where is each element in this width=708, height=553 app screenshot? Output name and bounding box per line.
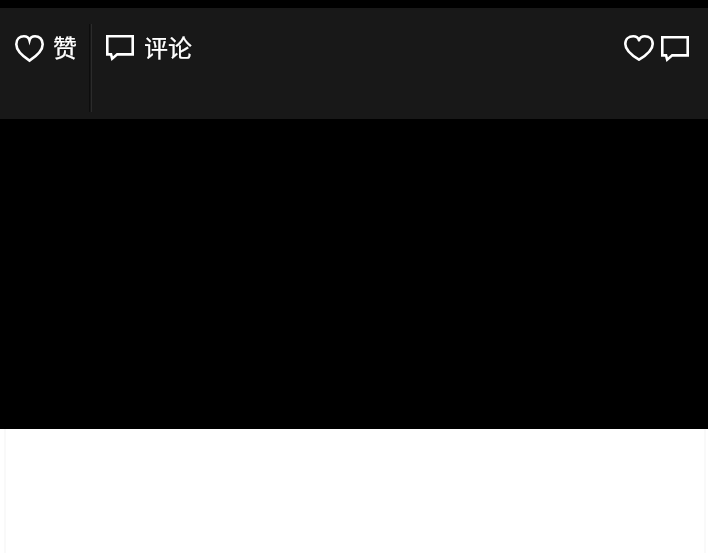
staticText: 赞 xyxy=(53,29,77,64)
button[interactable]: Comment xyxy=(657,31,693,65)
staticText: 评论 xyxy=(144,29,192,64)
button[interactable]: Like xyxy=(620,31,658,65)
button[interactable]: 赞 xyxy=(0,8,90,119)
button[interactable]: 评论 xyxy=(92,8,292,119)
